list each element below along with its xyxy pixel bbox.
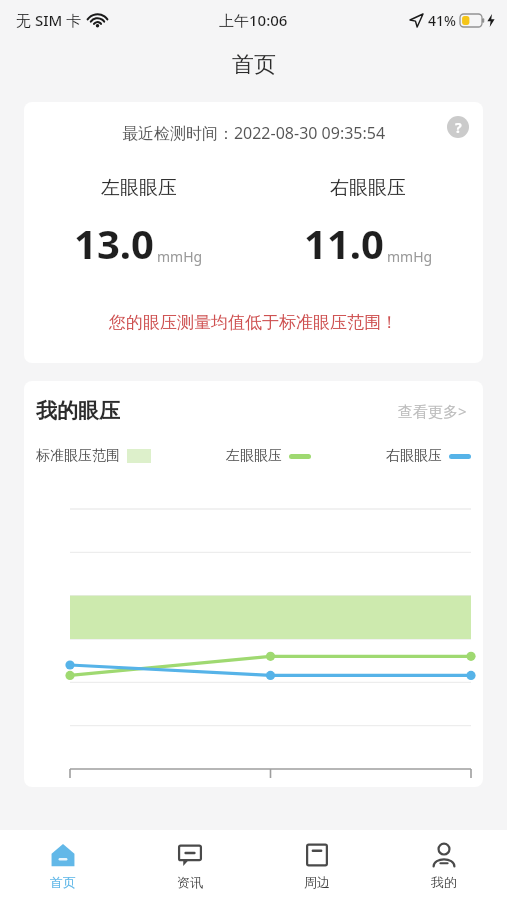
button[interactable]: 资讯 <box>126 830 253 900</box>
staticText: 无 SIM 卡 <box>16 10 82 30</box>
staticText: ? <box>455 118 462 137</box>
staticText: 周边 <box>304 874 330 890</box>
staticText: 我的眼压 <box>36 398 120 424</box>
staticText: 41% <box>428 11 456 30</box>
staticText: 标准眼压范围 <box>36 447 120 465</box>
button[interactable]: 我的 <box>380 830 507 900</box>
staticText: 您的眼压测量均值低于标准眼压范围！ <box>24 312 483 333</box>
button[interactable]: 周边 <box>253 830 380 900</box>
staticText: 右眼眼压 <box>330 176 406 200</box>
button[interactable]: 首页 <box>0 830 126 900</box>
staticText: 最近检测时间：2022-08-30 09:35:54 <box>24 122 483 144</box>
staticText: 查看更多> <box>398 401 467 421</box>
button[interactable]: 帮助 <box>447 116 469 138</box>
staticText: 左眼眼压 <box>101 176 177 200</box>
staticText: 首页 <box>232 51 276 79</box>
staticText: mmHg <box>387 247 433 266</box>
staticText: 上午10:06 <box>219 10 288 30</box>
staticText: 资讯 <box>177 874 203 890</box>
staticText: 13.0 <box>74 216 154 270</box>
staticText: 右眼眼压 <box>386 447 442 465</box>
button[interactable]: 查看更多> <box>394 397 471 425</box>
staticText: 我的 <box>431 874 457 890</box>
staticText: 首页 <box>50 874 76 890</box>
staticText: 左眼眼压 <box>226 447 282 465</box>
staticText: mmHg <box>157 247 203 266</box>
staticText: 11.0 <box>304 216 384 270</box>
